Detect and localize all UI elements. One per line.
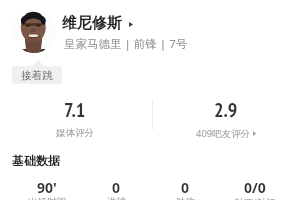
staticText: 基础数据 (12, 153, 60, 168)
button[interactable]: Player photo (12, 9, 56, 53)
staticText: 进球 (107, 196, 126, 200)
staticText: 出场时间 (28, 196, 66, 200)
button[interactable]: 2.9 (152, 97, 299, 140)
staticText: 助攻 (176, 196, 195, 200)
button[interactable]: 维尼修斯 (62, 14, 133, 33)
staticText: 409吧友评分 (196, 127, 251, 140)
staticText: 媒体评分 (56, 127, 94, 139)
staticText: 0/0 (244, 178, 266, 197)
staticText: 0 (181, 178, 190, 197)
button[interactable]: 7.1 (0, 97, 149, 139)
staticText: 射正/射门 (234, 196, 276, 200)
staticText: 维尼修斯 (62, 14, 122, 33)
staticText: 90' (37, 178, 57, 197)
staticText: 0 (112, 178, 121, 197)
staticText: 2.9 (214, 97, 238, 123)
staticText: 7.1 (64, 97, 86, 123)
staticText: 接着跳 (21, 69, 53, 82)
staticText: 皇家马德里 | 前锋 | 7号 (64, 36, 188, 52)
button[interactable]: 接着跳 (12, 66, 62, 84)
